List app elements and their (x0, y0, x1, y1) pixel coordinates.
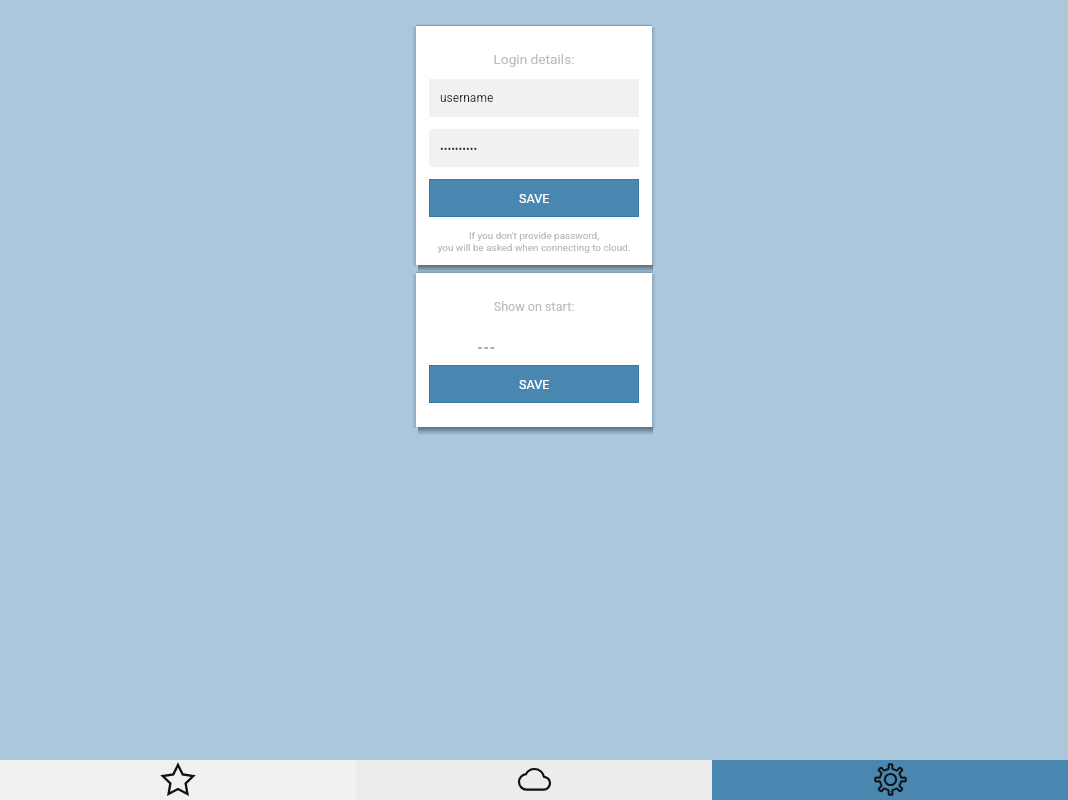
button[interactable]: Settings (712, 760, 1068, 800)
button[interactable]: SAVE (429, 179, 639, 217)
button[interactable]: Cloud storage (356, 760, 712, 800)
staticText: •••••••••• (440, 143, 478, 156)
staticText: If you don't provide password, you will … (416, 230, 652, 254)
button[interactable]: •••••••••• (429, 129, 639, 167)
button[interactable]: username (429, 79, 639, 117)
button[interactable]: SAVE (429, 365, 639, 403)
staticText: Show on start: (416, 299, 652, 314)
button[interactable] (429, 339, 639, 357)
staticText: SAVE (519, 377, 550, 392)
staticText: username (440, 91, 494, 105)
staticText: Login details: (416, 51, 652, 67)
staticText: SAVE (519, 191, 550, 206)
button[interactable]: Favorites (0, 760, 356, 800)
